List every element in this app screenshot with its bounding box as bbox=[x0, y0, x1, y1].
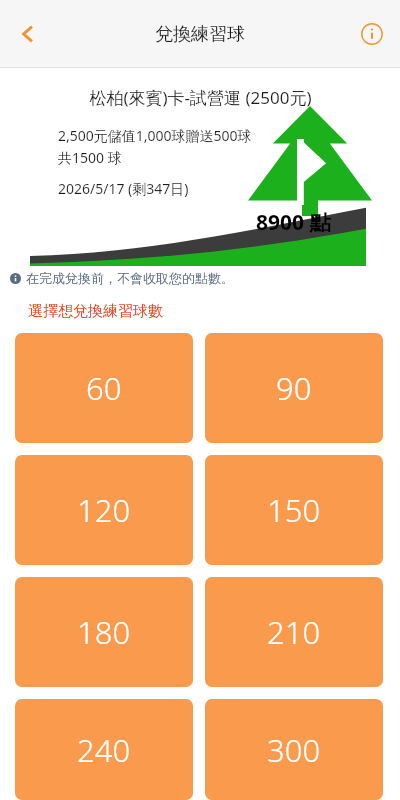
button[interactable]: 180 bbox=[15, 577, 193, 687]
staticText: 在完成兌換前，不會收取您的點數。 bbox=[26, 270, 234, 286]
staticText: 共1500 球 bbox=[58, 148, 122, 167]
staticText: 選擇想兌換練習球數 bbox=[28, 302, 163, 321]
button[interactable]: 120 bbox=[15, 455, 193, 565]
staticText: 8900 點 bbox=[256, 208, 331, 237]
staticText: 210 bbox=[267, 611, 321, 653]
staticText: 120 bbox=[77, 489, 131, 531]
staticText: 150 bbox=[267, 489, 321, 531]
staticText: 松柏(來賓)卡-試營運 (2500元) bbox=[89, 86, 312, 109]
staticText: 兌換練習球 bbox=[155, 23, 245, 46]
button[interactable]: 240 bbox=[15, 699, 193, 800]
staticText: 180 bbox=[77, 611, 131, 653]
button[interactable]: Information bbox=[350, 12, 394, 56]
staticText: 240 bbox=[77, 729, 131, 771]
staticText: 90 bbox=[276, 367, 312, 409]
button[interactable]: 90 bbox=[205, 333, 383, 443]
staticText: 300 bbox=[267, 729, 321, 771]
button[interactable]: Back bbox=[4, 10, 52, 58]
staticText: 2026/5/17 (剩347日) bbox=[58, 179, 189, 198]
staticText: 60 bbox=[86, 367, 122, 409]
button[interactable]: 210 bbox=[205, 577, 383, 687]
staticText: 2,500元儲值1,000球贈送500球 bbox=[58, 126, 252, 145]
button[interactable]: 150 bbox=[205, 455, 383, 565]
button[interactable]: 60 bbox=[15, 333, 193, 443]
button[interactable]: 300 bbox=[205, 699, 383, 800]
